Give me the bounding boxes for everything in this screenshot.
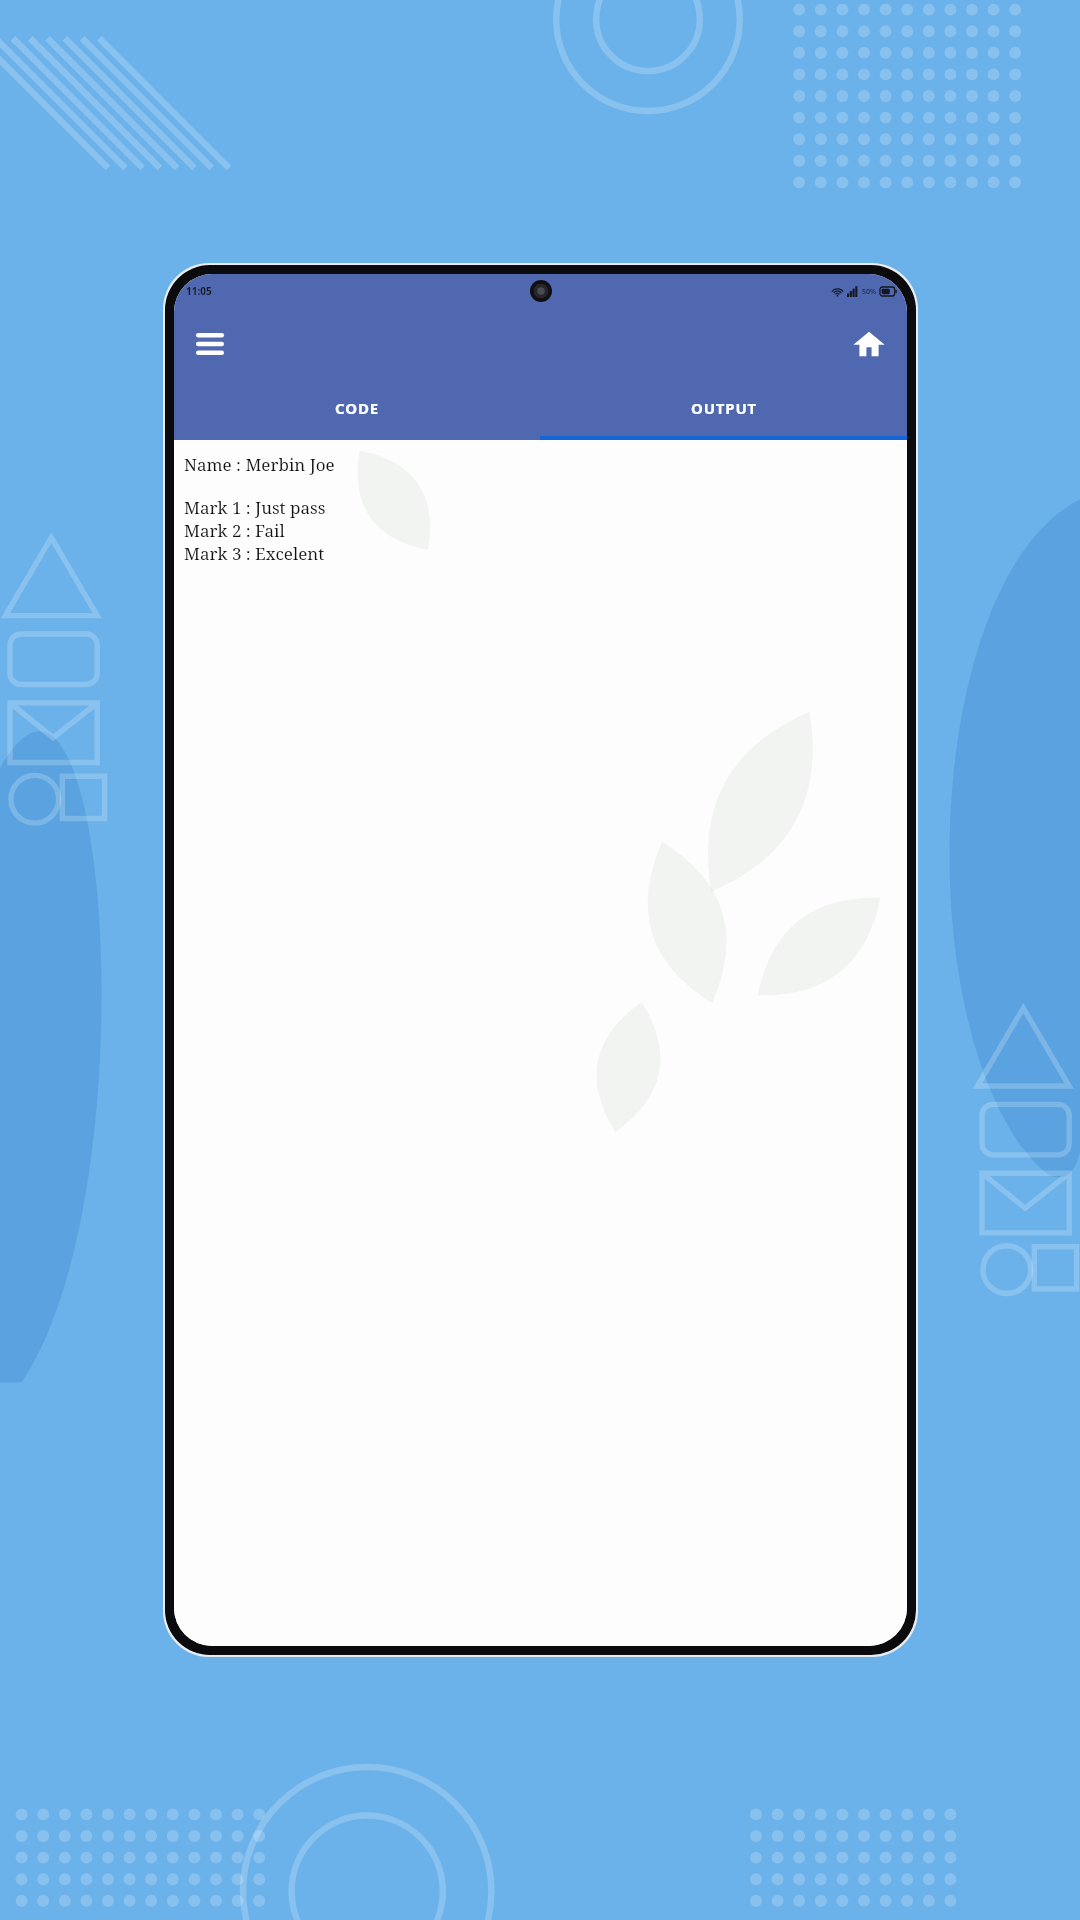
staticText: OUTPUT: [691, 398, 757, 418]
staticText: Mark 1 : Just pass: [184, 496, 326, 519]
staticText: 50%: [862, 287, 876, 297]
staticText: Name : Merbin Joe: [184, 453, 335, 476]
button[interactable]: Home: [845, 320, 893, 368]
staticText: Mark 2 : Fail: [184, 519, 285, 542]
staticText: Mark 3 : Excelent: [184, 542, 325, 565]
button[interactable]: CODE: [174, 380, 540, 436]
button[interactable]: OUTPUT: [540, 380, 907, 436]
staticText: CODE: [335, 398, 379, 418]
staticText: 11:05: [186, 284, 212, 298]
button[interactable]: Menu: [186, 320, 234, 368]
